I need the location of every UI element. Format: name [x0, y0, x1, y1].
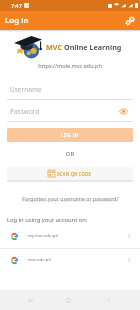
staticText: Password: [10, 107, 40, 116]
staticText: SCAN QR CODE: [57, 171, 92, 177]
staticText: Log in: [5, 15, 29, 26]
staticText: OR: [0, 150, 140, 158]
button[interactable]: my.mvc.edu.ph: [0, 225, 140, 247]
staticText: Online Learning: [64, 42, 122, 52]
staticText: Username: [10, 85, 42, 94]
button[interactable]: SCAN QR CODE: [7, 167, 133, 180]
staticText: Log in using your account on:: [7, 216, 88, 224]
staticText: 7:47: [11, 2, 22, 9]
button[interactable]: mvc.edu.ph: [0, 249, 140, 271]
staticText: mvc.edu.ph: [28, 257, 51, 263]
staticText: https://mole.mvc.edu.ph: [0, 62, 140, 69]
staticText: LOG IN: [61, 132, 79, 138]
staticText: my.mvc.edu.ph: [28, 233, 58, 239]
other: Show password: [119, 107, 128, 116]
button[interactable]: Forgotten your username or password?: [22, 195, 119, 202]
button[interactable]: LOG IN: [7, 128, 133, 142]
staticText: MVC: [46, 42, 64, 52]
button[interactable]: Username: [7, 82, 133, 100]
button[interactable]: Settings: [121, 12, 138, 29]
button[interactable]: Home: [58, 290, 79, 310]
button[interactable]: Password: [7, 104, 133, 122]
